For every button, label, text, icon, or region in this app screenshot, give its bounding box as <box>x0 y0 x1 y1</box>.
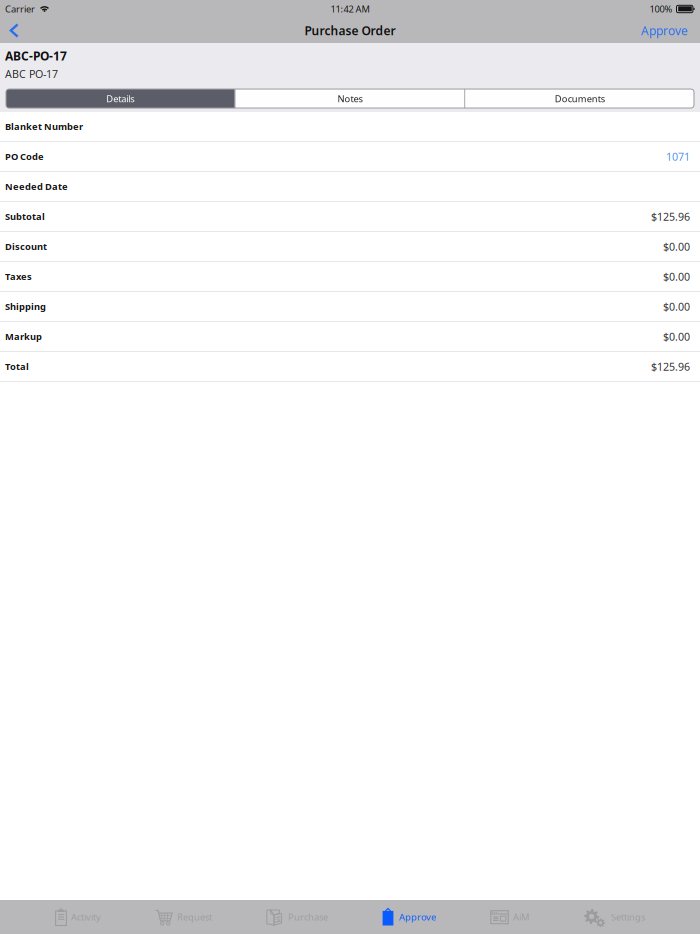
staticText: Carrier <box>5 3 35 15</box>
staticText: 100% <box>649 3 672 15</box>
button[interactable]: Approve <box>382 900 436 934</box>
staticText: $125.96 <box>651 359 690 374</box>
staticText: PO Code <box>5 150 44 163</box>
button[interactable]: Blanket Number <box>0 112 700 142</box>
button[interactable]: Settings <box>583 900 645 934</box>
button[interactable]: Taxes <box>0 262 700 292</box>
staticText: $0.00 <box>663 299 690 314</box>
button[interactable]: Shipping <box>0 292 700 322</box>
button[interactable]: Total <box>0 352 700 382</box>
button[interactable]: Documents <box>465 89 694 108</box>
staticText: Blanket Number <box>5 120 83 133</box>
staticText: Request <box>177 911 212 923</box>
button[interactable]: AiM <box>490 900 529 934</box>
button[interactable]: Needed Date <box>0 172 700 202</box>
staticText: Needed Date <box>5 180 68 193</box>
button[interactable]: Details <box>6 89 235 108</box>
staticText: $0.00 <box>663 269 690 284</box>
staticText: Purchase <box>288 911 328 923</box>
staticText: Discount <box>5 240 47 253</box>
button[interactable]: Subtotal <box>0 202 700 232</box>
staticText: Total <box>5 360 29 373</box>
staticText: $0.00 <box>663 329 690 344</box>
button[interactable]: Markup <box>0 322 700 352</box>
button[interactable]: Back <box>0 19 33 42</box>
staticText: ABC PO-17 <box>5 67 58 81</box>
staticText: Notes <box>337 92 362 105</box>
staticText: 1071 <box>666 149 690 164</box>
staticText: $0.00 <box>663 239 690 254</box>
staticText: Shipping <box>5 300 46 313</box>
staticText: Markup <box>5 330 42 343</box>
staticText: Documents <box>555 92 605 105</box>
button[interactable]: PO Code <box>0 142 700 172</box>
button[interactable]: Activity <box>55 900 101 934</box>
staticText: Taxes <box>5 270 32 283</box>
staticText: $125.96 <box>651 209 690 224</box>
staticText: Details <box>106 92 134 105</box>
staticText: Activity <box>71 911 101 923</box>
button[interactable]: Notes <box>236 89 464 108</box>
button[interactable]: Discount <box>0 232 700 262</box>
staticText: 11:42 AM <box>330 3 369 15</box>
staticText: Settings <box>611 911 645 923</box>
staticText: Subtotal <box>5 210 45 223</box>
staticText: ABC-PO-17 <box>5 48 67 64</box>
button[interactable]: Approve <box>627 18 700 42</box>
button[interactable]: Request <box>155 900 212 934</box>
button[interactable]: Purchase <box>266 900 328 934</box>
staticText: AiM <box>513 911 529 923</box>
staticText: Approve <box>399 911 436 923</box>
staticText: Purchase Order <box>304 22 395 38</box>
staticText: Approve <box>641 22 688 38</box>
